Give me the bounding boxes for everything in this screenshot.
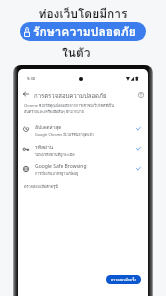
staticText: ตรวจสอบอีกครั้ง <box>111 277 136 283</box>
staticText: รักษาความปลอดภัย <box>33 22 136 41</box>
staticText: Chrome ช่วยให้คุณปลอดภัยจากการเข้าชมเว็บ… <box>24 103 134 115</box>
staticText: Google Safe Browsing <box>35 163 87 170</box>
staticText: การป้องกันมาตรฐานเปิดอยู่ <box>35 171 79 177</box>
staticText: ในตัว <box>62 43 91 62</box>
staticText: การตรวจสอบความปลอดภัย <box>34 91 107 101</box>
staticText: 9:30 <box>27 76 35 81</box>
staticText: ตรวจสอบเมื่อสักครู่นี้ <box>24 184 58 190</box>
staticText: รหัสผ่าน <box>35 143 54 151</box>
staticText: อัปเดตล่าสุด <box>35 123 62 131</box>
button[interactable]: Help <box>133 87 148 103</box>
button[interactable]: Google Safe Browsing <box>18 161 148 178</box>
button[interactable]: ตรวจสอบอีกครั้ง <box>106 275 141 284</box>
button[interactable]: อัปเดตล่าสุด <box>18 121 148 138</box>
staticText: ไม่พบรหัสผ่านที่ถูกละเมิด <box>35 152 75 158</box>
button[interactable]: รหัสผ่าน <box>18 141 148 158</box>
staticText: ท่องเว็บโดยมีการ <box>38 4 128 23</box>
button[interactable]: Back <box>18 86 34 102</box>
staticText: Google Chrome มีเวอร์ชันล่าสุดแล้ว <box>35 132 94 138</box>
